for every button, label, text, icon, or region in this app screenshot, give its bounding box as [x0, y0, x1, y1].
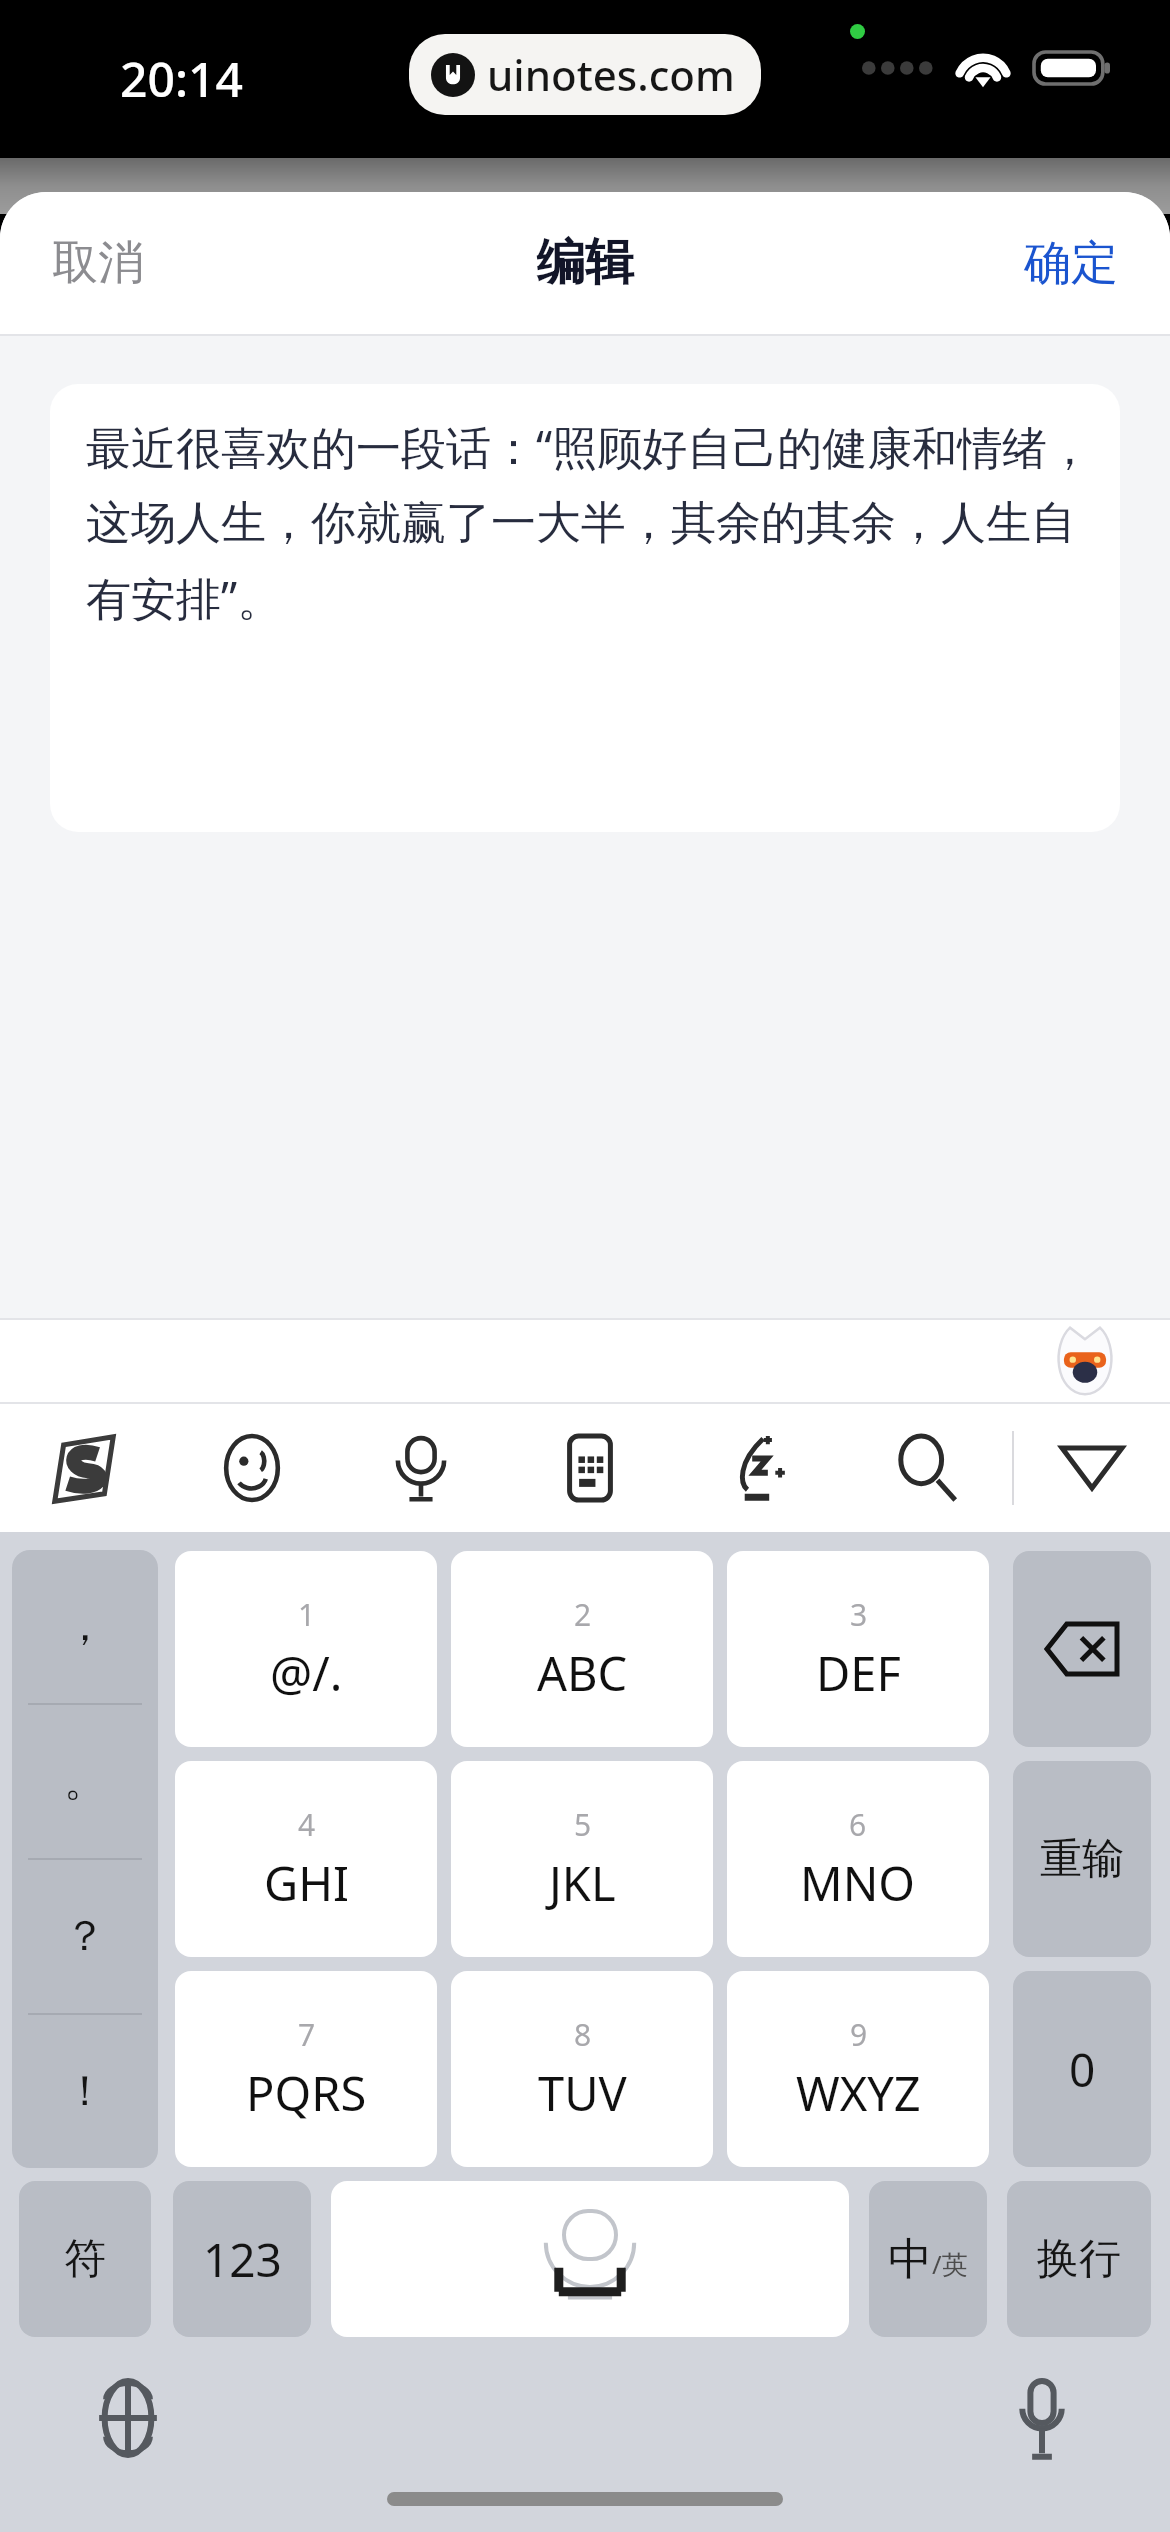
- staticText: 3: [850, 1594, 868, 1635]
- button[interactable]: Input method: [1046, 1322, 1124, 1400]
- staticText: @/.: [270, 1641, 343, 1705]
- button[interactable]: 3: [727, 1551, 989, 1747]
- button[interactable]: Keyboard: [505, 1404, 674, 1532]
- staticText: 6: [849, 1804, 867, 1845]
- button[interactable]: 5: [451, 1761, 713, 1957]
- staticText: PQRS: [246, 2061, 367, 2125]
- button[interactable]: ？: [12, 1860, 158, 2013]
- button[interactable]: Voice: [336, 1404, 505, 1532]
- staticText: 重输: [1040, 1833, 1124, 1886]
- button[interactable]: 4: [175, 1761, 437, 1957]
- staticText: ABC: [537, 1641, 628, 1705]
- button[interactable]: Dictation: [994, 2370, 1090, 2466]
- staticText: 9: [850, 2014, 868, 2055]
- staticText: ？: [64, 1910, 106, 1963]
- button[interactable]: 。: [12, 1705, 158, 1858]
- staticText: WXYZ: [796, 2061, 921, 2125]
- button[interactable]: 取消: [0, 192, 196, 334]
- button[interactable]: 6: [727, 1761, 989, 1957]
- button[interactable]: 最近很喜欢的一段话：“照顾好自己的健康和情绪，这场人生，你就赢了一大半，其余的其…: [50, 384, 1120, 832]
- button[interactable]: Search: [843, 1404, 1012, 1532]
- staticText: GHI: [264, 1851, 349, 1915]
- button[interactable]: Space: [331, 2181, 849, 2337]
- button[interactable]: 2: [451, 1551, 713, 1747]
- staticText: 8: [574, 2014, 592, 2055]
- button[interactable]: 确定: [972, 192, 1170, 334]
- staticText: 2: [574, 1594, 592, 1635]
- staticText: /英: [932, 2246, 968, 2282]
- staticText: 7: [298, 2014, 316, 2055]
- button[interactable]: ，: [12, 1550, 158, 1703]
- button[interactable]: Handwriting: [674, 1404, 843, 1532]
- staticText: JKL: [549, 1851, 616, 1915]
- staticText: 1: [298, 1594, 316, 1635]
- button[interactable]: ！: [12, 2015, 158, 2168]
- button[interactable]: Delete: [1013, 1551, 1151, 1747]
- button[interactable]: 中: [869, 2181, 987, 2337]
- button[interactable]: 符: [19, 2181, 151, 2337]
- button[interactable]: Hide keyboard: [1014, 1404, 1170, 1532]
- button[interactable]: 7: [175, 1971, 437, 2167]
- button[interactable]: 重输: [1013, 1761, 1151, 1957]
- button[interactable]: 1: [175, 1551, 437, 1747]
- staticText: 换行: [1037, 2233, 1121, 2286]
- staticText: 4: [298, 1804, 316, 1845]
- staticText: 0: [1069, 2038, 1096, 2101]
- staticText: 确定: [1024, 234, 1118, 293]
- staticText: 最近很喜欢的一段话：“照顾好自己的健康和情绪，这场人生，你就赢了一大半，其余的其…: [86, 416, 1094, 628]
- button[interactable]: Sogou: [0, 1404, 168, 1532]
- staticText: 123: [203, 2228, 282, 2291]
- staticText: 。: [64, 1755, 106, 1808]
- staticText: 取消: [52, 234, 144, 292]
- staticText: TUV: [538, 2061, 627, 2125]
- staticText: 中: [888, 2232, 932, 2287]
- button[interactable]: 8: [451, 1971, 713, 2167]
- button[interactable]: Emoji: [168, 1404, 336, 1532]
- staticText: 5: [574, 1804, 592, 1845]
- staticText: ，: [64, 1600, 106, 1653]
- staticText: MNO: [800, 1851, 916, 1915]
- staticText: ！: [64, 2065, 106, 2118]
- staticText: 编辑: [536, 232, 634, 294]
- button[interactable]: Switch language: [80, 2370, 176, 2466]
- staticText: 符: [64, 2233, 106, 2286]
- staticText: DEF: [816, 1641, 901, 1705]
- button[interactable]: 换行: [1007, 2181, 1151, 2337]
- button[interactable]: 9: [727, 1971, 989, 2167]
- staticText: 20:14: [120, 46, 243, 111]
- staticText: uinotes.com: [487, 46, 735, 103]
- button[interactable]: 123: [173, 2181, 311, 2337]
- button[interactable]: 0: [1013, 1971, 1151, 2167]
